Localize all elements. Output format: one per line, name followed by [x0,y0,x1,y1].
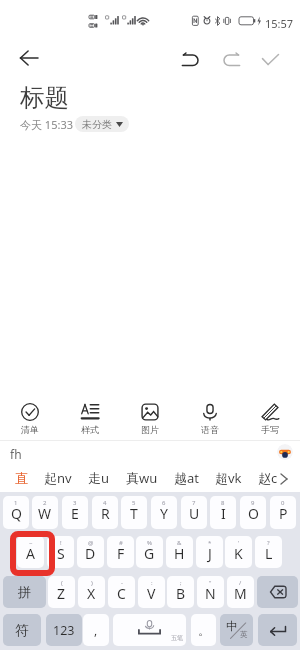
button[interactable]: 赵c [250,469,286,487]
staticText: 9 [251,499,255,507]
button[interactable]: 走u [80,469,118,487]
staticText: ! [60,539,62,547]
button[interactable]: 9 [240,496,266,529]
staticText: 。 [198,623,210,638]
button[interactable]: % [136,536,163,568]
staticText: 语音 [201,424,219,435]
staticText: V [147,584,156,603]
staticText: H [174,544,185,563]
staticText: Z [57,584,66,603]
button[interactable]: 。 [191,614,216,646]
button[interactable]: / [227,576,254,608]
staticText: 今天 15:33 [20,117,73,132]
staticText: 手写 [261,424,279,435]
staticText: 0 [281,499,285,507]
staticText: 8 [221,499,225,507]
button[interactable]: & [166,536,193,568]
staticText: 标题 [20,82,69,113]
button[interactable]: ; [167,576,194,608]
button[interactable]: Redo [214,42,248,76]
staticText: 五笔 [171,634,183,642]
staticText: Y [160,504,168,523]
button[interactable]: 起nv [36,469,80,487]
button[interactable]: Undo [174,42,208,76]
button[interactable]: 2 [32,496,58,529]
staticText: : [151,579,153,587]
staticText: J [208,544,212,563]
staticText: 符 [15,622,29,639]
button[interactable]: 清单 [0,392,60,440]
staticText: N [205,584,216,603]
button[interactable]: 语音 [180,392,240,440]
button[interactable]: 未分类 [75,116,129,132]
staticText: L [265,544,273,563]
button[interactable]: 手写 [240,392,300,440]
button[interactable]: 3 [62,496,88,529]
staticText: 超vk [215,469,242,487]
button[interactable]: Enter [258,614,297,646]
button[interactable]: - [108,576,135,608]
staticText: * [208,539,212,547]
button[interactable]: 5 [121,496,147,529]
staticText: 直 [15,470,28,486]
button[interactable]: ! [47,536,74,568]
button[interactable]: Done [253,42,287,76]
staticText: 7 [192,499,196,507]
button[interactable]: 中 [220,614,253,646]
button[interactable]: ~ [17,536,44,568]
staticText: ~ [29,539,33,547]
button[interactable]: 图片 [120,392,180,440]
button[interactable]: 符 [3,614,41,646]
staticText: ) [91,579,93,587]
button[interactable]: 越at [166,469,207,487]
button[interactable]: 超vk [207,469,250,487]
button[interactable]: Input method options [277,444,293,460]
button[interactable]: Backspace [257,576,298,608]
button[interactable]: : [138,576,165,608]
button[interactable]: , [83,614,109,646]
staticText: 英 [240,630,248,639]
staticText: 15:57 [265,16,294,31]
button[interactable]: Space [113,614,186,646]
staticText: C [117,584,126,603]
button[interactable]: 6 [151,496,177,529]
staticText: X [87,584,96,603]
staticText: - [121,579,123,587]
button[interactable]: 真wu [118,469,166,487]
button[interactable]: @ [77,536,104,568]
button[interactable]: ( [48,576,75,608]
button[interactable]: 123 [46,614,82,646]
button[interactable]: # [107,536,134,568]
staticText: Q [11,504,22,523]
button[interactable]: 8 [210,496,236,529]
other: Backspace [257,576,298,608]
staticText: 4 [103,499,107,507]
button[interactable]: 拼 [3,576,46,608]
button[interactable]: ) [78,576,105,608]
staticText: A [26,544,35,563]
button[interactable]: 直 [7,470,36,486]
button[interactable]: ? [255,536,282,568]
staticText: 图片 [141,424,159,435]
button[interactable]: 样式 [60,392,120,440]
button[interactable]: 1 [3,496,29,529]
staticText: 拼 [18,584,32,601]
button[interactable]: ' [225,536,252,568]
button[interactable]: 0 [270,496,296,529]
staticText: " [209,579,212,587]
staticText: M [234,584,247,603]
button[interactable]: More candidates [274,469,294,489]
staticText: G [144,544,155,563]
staticText: fh [10,446,22,462]
staticText: O [248,504,259,523]
button[interactable]: " [197,576,224,608]
staticText: 3 [73,499,77,507]
button[interactable]: 4 [92,496,118,529]
button[interactable]: * [196,536,223,568]
staticText: I [221,504,226,523]
staticText: , [94,622,98,638]
button[interactable]: Back [12,41,46,75]
staticText: 走u [88,469,110,487]
button[interactable]: 7 [181,496,207,529]
staticText: B [176,584,186,603]
